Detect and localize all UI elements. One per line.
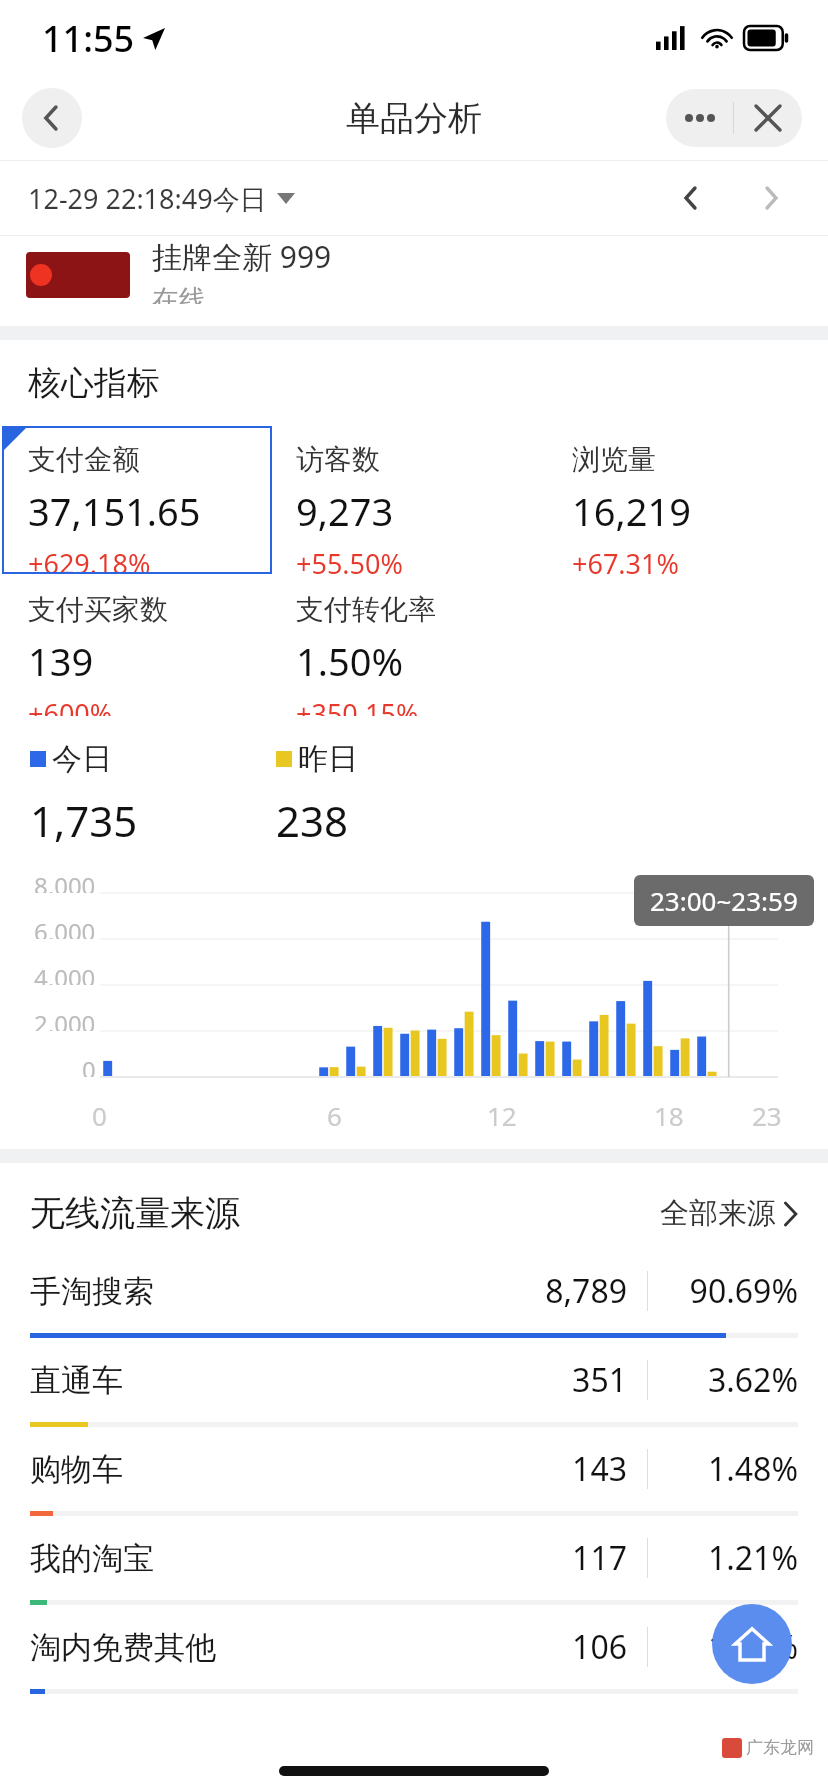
button[interactable]: Back [22, 88, 82, 148]
staticText: 1.48% [668, 1447, 798, 1491]
staticText: 23:00~23:59 [650, 883, 798, 918]
staticText: 0 [92, 1098, 107, 1133]
staticText: 3.62% [668, 1358, 798, 1402]
staticText: 6,000 [34, 915, 96, 939]
staticText: 139 [28, 635, 94, 687]
staticText: 117 [497, 1536, 627, 1580]
button[interactable]: 我的淘宝 [0, 1516, 828, 1605]
staticText: 我的淘宝 [30, 1539, 154, 1578]
staticText: 12 [487, 1098, 517, 1133]
button[interactable]: Next day [744, 171, 798, 225]
staticText: 核心指标 [28, 362, 160, 404]
button[interactable]: 支付金额 [2, 426, 272, 574]
staticText: 支付转化率 [296, 592, 436, 627]
staticText: 单品分析 [346, 97, 482, 140]
staticText: 昨日 [298, 740, 358, 778]
staticText: 支付金额 [28, 442, 140, 477]
staticText: 11:55 [42, 14, 135, 63]
staticText: 12-29 22:18:49今日 [28, 180, 267, 217]
button[interactable]: 12-29 22:18:49今日 [28, 180, 295, 217]
staticText: 购物车 [30, 1450, 123, 1489]
button[interactable]: 购物车 [0, 1427, 828, 1516]
staticText: 6 [327, 1098, 342, 1133]
button[interactable]: 全部来源 [660, 1195, 798, 1232]
staticText: 访客数 [296, 442, 380, 477]
staticText: 23 [752, 1098, 782, 1133]
staticText: 无线流量来源 [30, 1191, 240, 1235]
staticText: 106 [497, 1625, 627, 1669]
staticText: 37,151.65 [28, 485, 201, 537]
staticText: 8,789 [497, 1269, 627, 1313]
button[interactable]: 支付转化率 [276, 592, 552, 716]
staticText: 挂牌全新 999 [152, 236, 332, 277]
button[interactable]: 浏览量 [552, 426, 828, 574]
button[interactable]: More options [666, 89, 733, 147]
staticText: 0 [82, 1053, 96, 1077]
staticText: 今日 [52, 740, 112, 778]
button[interactable]: 直通车 [0, 1338, 828, 1427]
staticText: 全部来源 [660, 1195, 776, 1232]
staticText: 1.50% [296, 635, 403, 687]
staticText: 18 [654, 1098, 684, 1133]
staticText: 238 [276, 792, 349, 849]
staticText: 143 [497, 1447, 627, 1491]
staticText: 1.21% [668, 1536, 798, 1580]
staticText: 8,000 [34, 869, 96, 893]
staticText: 2,000 [34, 1007, 96, 1031]
button[interactable]: Close [734, 89, 802, 147]
staticText: 4,000 [34, 961, 96, 985]
staticText: +600% [28, 695, 113, 716]
staticText: 广东龙网 [746, 1737, 814, 1758]
button[interactable]: Home [712, 1604, 792, 1684]
staticText: 90.69% [668, 1269, 798, 1313]
staticText: 1.09% [668, 1625, 798, 1669]
staticText: +629.18% [28, 545, 151, 574]
button[interactable]: 手淘搜索 [0, 1249, 828, 1338]
staticText: 16,219 [572, 485, 691, 537]
staticText: 1,735 [30, 792, 138, 849]
staticText: +350.15% [296, 695, 419, 716]
button[interactable]: Previous day [664, 171, 718, 225]
staticText: 手淘搜索 [30, 1272, 154, 1311]
staticText: 351 [497, 1358, 627, 1402]
staticText: 9,273 [296, 485, 394, 537]
button[interactable]: 访客数 [276, 426, 552, 574]
staticText: 支付买家数 [28, 592, 168, 627]
staticText: +55.50% [296, 545, 403, 574]
staticText: 直通车 [30, 1361, 123, 1400]
button[interactable]: 支付买家数 [0, 592, 276, 716]
staticText: 在线 [152, 283, 206, 304]
staticText: 浏览量 [572, 442, 656, 477]
button[interactable]: 淘内免费其他 [0, 1605, 828, 1694]
staticText: 淘内免费其他 [30, 1628, 216, 1667]
staticText: +67.31% [572, 545, 679, 574]
